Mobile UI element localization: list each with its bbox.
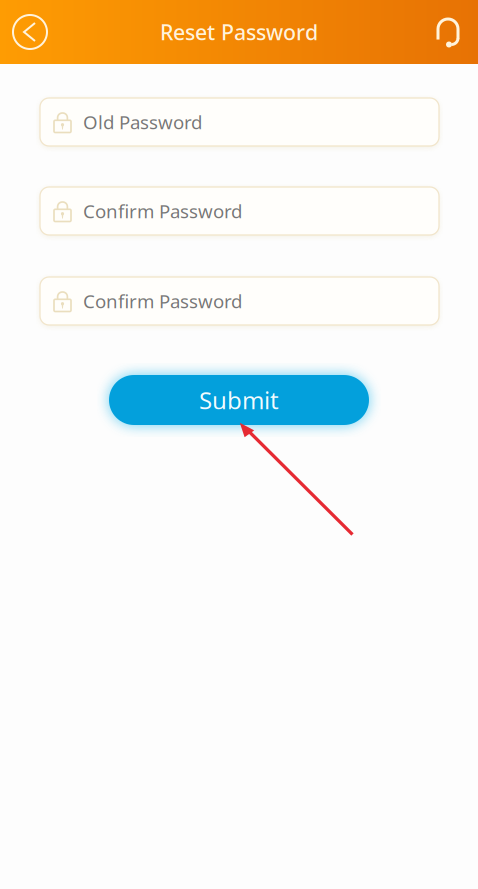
- staticText: Old Password: [83, 110, 202, 134]
- button[interactable]: Customer support: [420, 0, 478, 64]
- button[interactable]: Back: [0, 0, 60, 64]
- staticText: Confirm Password: [83, 289, 242, 313]
- button[interactable]: Submit: [109, 375, 369, 425]
- staticText: Submit: [199, 384, 279, 416]
- button[interactable]: Confirm Password: [40, 277, 439, 325]
- staticText: Confirm Password: [83, 199, 242, 223]
- button[interactable]: Confirm Password: [40, 187, 439, 235]
- staticText: Reset Password: [160, 18, 318, 46]
- button[interactable]: Old Password: [40, 98, 439, 146]
